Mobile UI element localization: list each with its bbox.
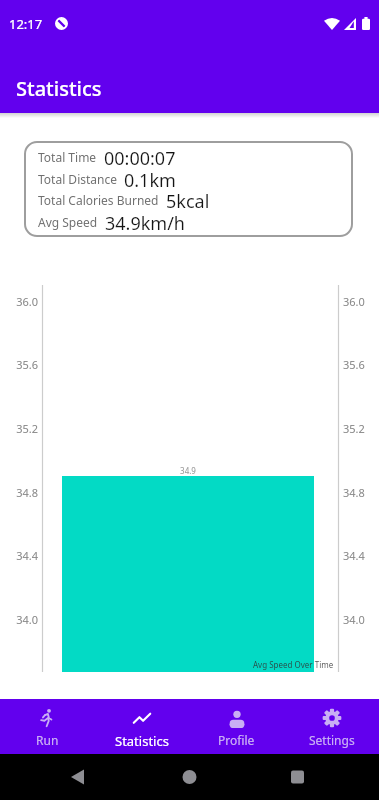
staticText: Total Time [38, 149, 97, 165]
staticText: 34.4 [8, 548, 38, 563]
staticText: Total Distance [38, 171, 117, 187]
button[interactable]: Settings [284, 699, 379, 754]
button[interactable] [168, 754, 212, 800]
button[interactable]: Run [0, 699, 94, 754]
staticText: Avg Speed [38, 214, 98, 230]
staticText: 35.6 [343, 357, 373, 372]
staticText: 34.0 [343, 612, 373, 627]
staticText: Profile [218, 732, 255, 748]
staticText: 35.6 [8, 357, 38, 372]
staticText: 35.2 [8, 421, 38, 436]
button[interactable] [276, 754, 320, 800]
staticText: 00:00:07 [104, 146, 176, 167]
staticText: 5kcal [166, 189, 210, 210]
staticText: Settings [309, 732, 355, 748]
staticText: 12:17 [9, 15, 43, 33]
button[interactable] [56, 754, 100, 800]
staticText: Total Calories Burned [38, 192, 159, 208]
staticText: 36.0 [8, 294, 38, 309]
staticText: Statistics [16, 75, 102, 102]
button[interactable]: Profile [189, 699, 284, 754]
staticText: 34.0 [8, 612, 38, 627]
staticText: 34.9km/h [105, 211, 185, 232]
staticText: 36.0 [343, 294, 373, 309]
button[interactable]: Statistics [94, 699, 189, 754]
staticText: Avg Speed Over Time [253, 659, 334, 670]
staticText: 34.4 [343, 548, 373, 563]
staticText: Run [36, 732, 59, 748]
staticText: Statistics [115, 732, 169, 750]
staticText: 0.1km [124, 168, 176, 189]
staticText: 34.9 [176, 465, 200, 476]
staticText: 34.8 [343, 485, 373, 500]
staticText: 35.2 [343, 421, 373, 436]
staticText: 34.8 [8, 485, 38, 500]
